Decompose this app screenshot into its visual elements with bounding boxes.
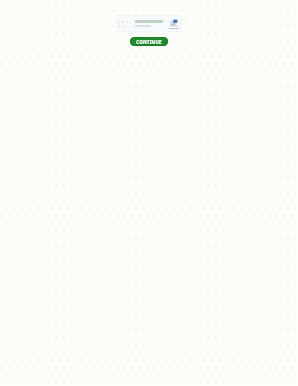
button[interactable]: CONTINUE xyxy=(130,37,168,46)
other: Logo xyxy=(168,19,180,29)
staticText: CONTINUE xyxy=(136,39,162,45)
button[interactable]: Logo xyxy=(116,15,182,32)
